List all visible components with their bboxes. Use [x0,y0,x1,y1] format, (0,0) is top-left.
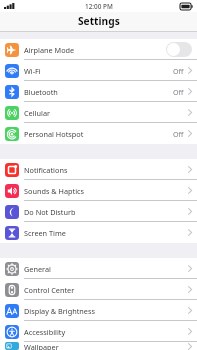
staticText: Off [173,66,184,76]
staticText: Wallpaper [24,342,188,350]
staticText: Display & Brightness [24,306,188,316]
staticText: Do Not Disturb [24,207,188,217]
staticText: Cellular [24,108,188,118]
button[interactable]: Wi-Fi [0,60,197,81]
staticText: Off [173,87,184,97]
staticText: Personal Hotspot [24,129,173,139]
button[interactable]: Airplane Mode [0,39,197,60]
staticText: 12:00 PM [85,2,113,11]
button[interactable]: Airplane Mode switch, off [166,42,192,57]
button[interactable]: Accessibility [0,321,197,342]
staticText: Wi-Fi [24,66,173,76]
button[interactable]: Wallpaper [0,342,197,350]
button[interactable]: Screen Time [0,222,197,243]
staticText: Off [173,129,184,139]
staticText: General [24,264,188,274]
staticText: Bluetooth [24,87,173,97]
staticText: Settings [78,14,120,28]
staticText: Control Center [24,285,188,295]
staticText: Notifications [24,165,188,175]
staticText: Accessibility [24,327,188,337]
button[interactable]: Cellular [0,102,197,123]
button[interactable]: General [0,258,197,279]
button[interactable]: Control Center [0,279,197,300]
button[interactable]: Sounds & Haptics [0,180,197,201]
button[interactable]: Do Not Disturb [0,201,197,222]
button[interactable]: Notifications [0,159,197,180]
staticText: Screen Time [24,228,188,238]
button[interactable]: Display & Brightness [0,300,197,321]
button[interactable]: Bluetooth [0,81,197,102]
staticText: Sounds & Haptics [24,186,188,196]
button[interactable]: Personal Hotspot [0,123,197,144]
staticText: Airplane Mode [24,45,166,55]
